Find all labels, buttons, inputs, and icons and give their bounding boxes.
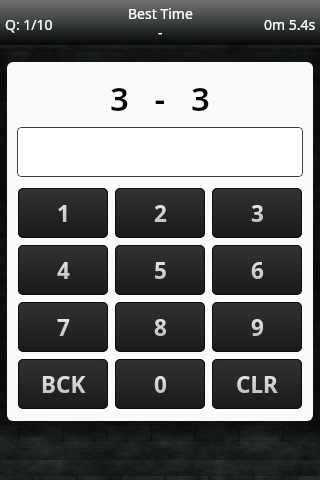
button[interactable]: 6 [212,245,302,295]
button[interactable]: 5 [115,245,205,295]
button[interactable]: 9 [212,302,302,352]
staticText: 2 [154,198,167,229]
button[interactable]: Answer input field [17,127,303,177]
button[interactable]: CLR [212,359,302,409]
button[interactable]: 8 [115,302,205,352]
button[interactable]: 4 [18,245,108,295]
button[interactable]: 2 [115,188,205,238]
button[interactable]: 7 [18,302,108,352]
staticText: 3 - 3 [110,76,210,121]
staticText: 4 [57,255,70,286]
staticText: - [158,23,163,42]
button[interactable]: 1 [18,188,108,238]
staticText: 6 [251,255,264,286]
staticText: 8 [154,312,167,343]
button[interactable]: 0 [115,359,205,409]
staticText: Q: 1/10 [5,15,53,34]
staticText: 0m 5.4s [264,15,316,34]
staticText: 5 [154,255,167,286]
button[interactable]: 3 [212,188,302,238]
staticText: BCK [41,369,86,400]
button[interactable]: BCK [18,359,108,409]
staticText: 3 [251,198,264,229]
staticText: 7 [57,312,70,343]
staticText: 0 [154,369,167,400]
staticText: 1 [57,198,70,229]
staticText: CLR [236,369,278,400]
staticText: Best Time [128,4,193,23]
staticText: 9 [251,312,264,343]
